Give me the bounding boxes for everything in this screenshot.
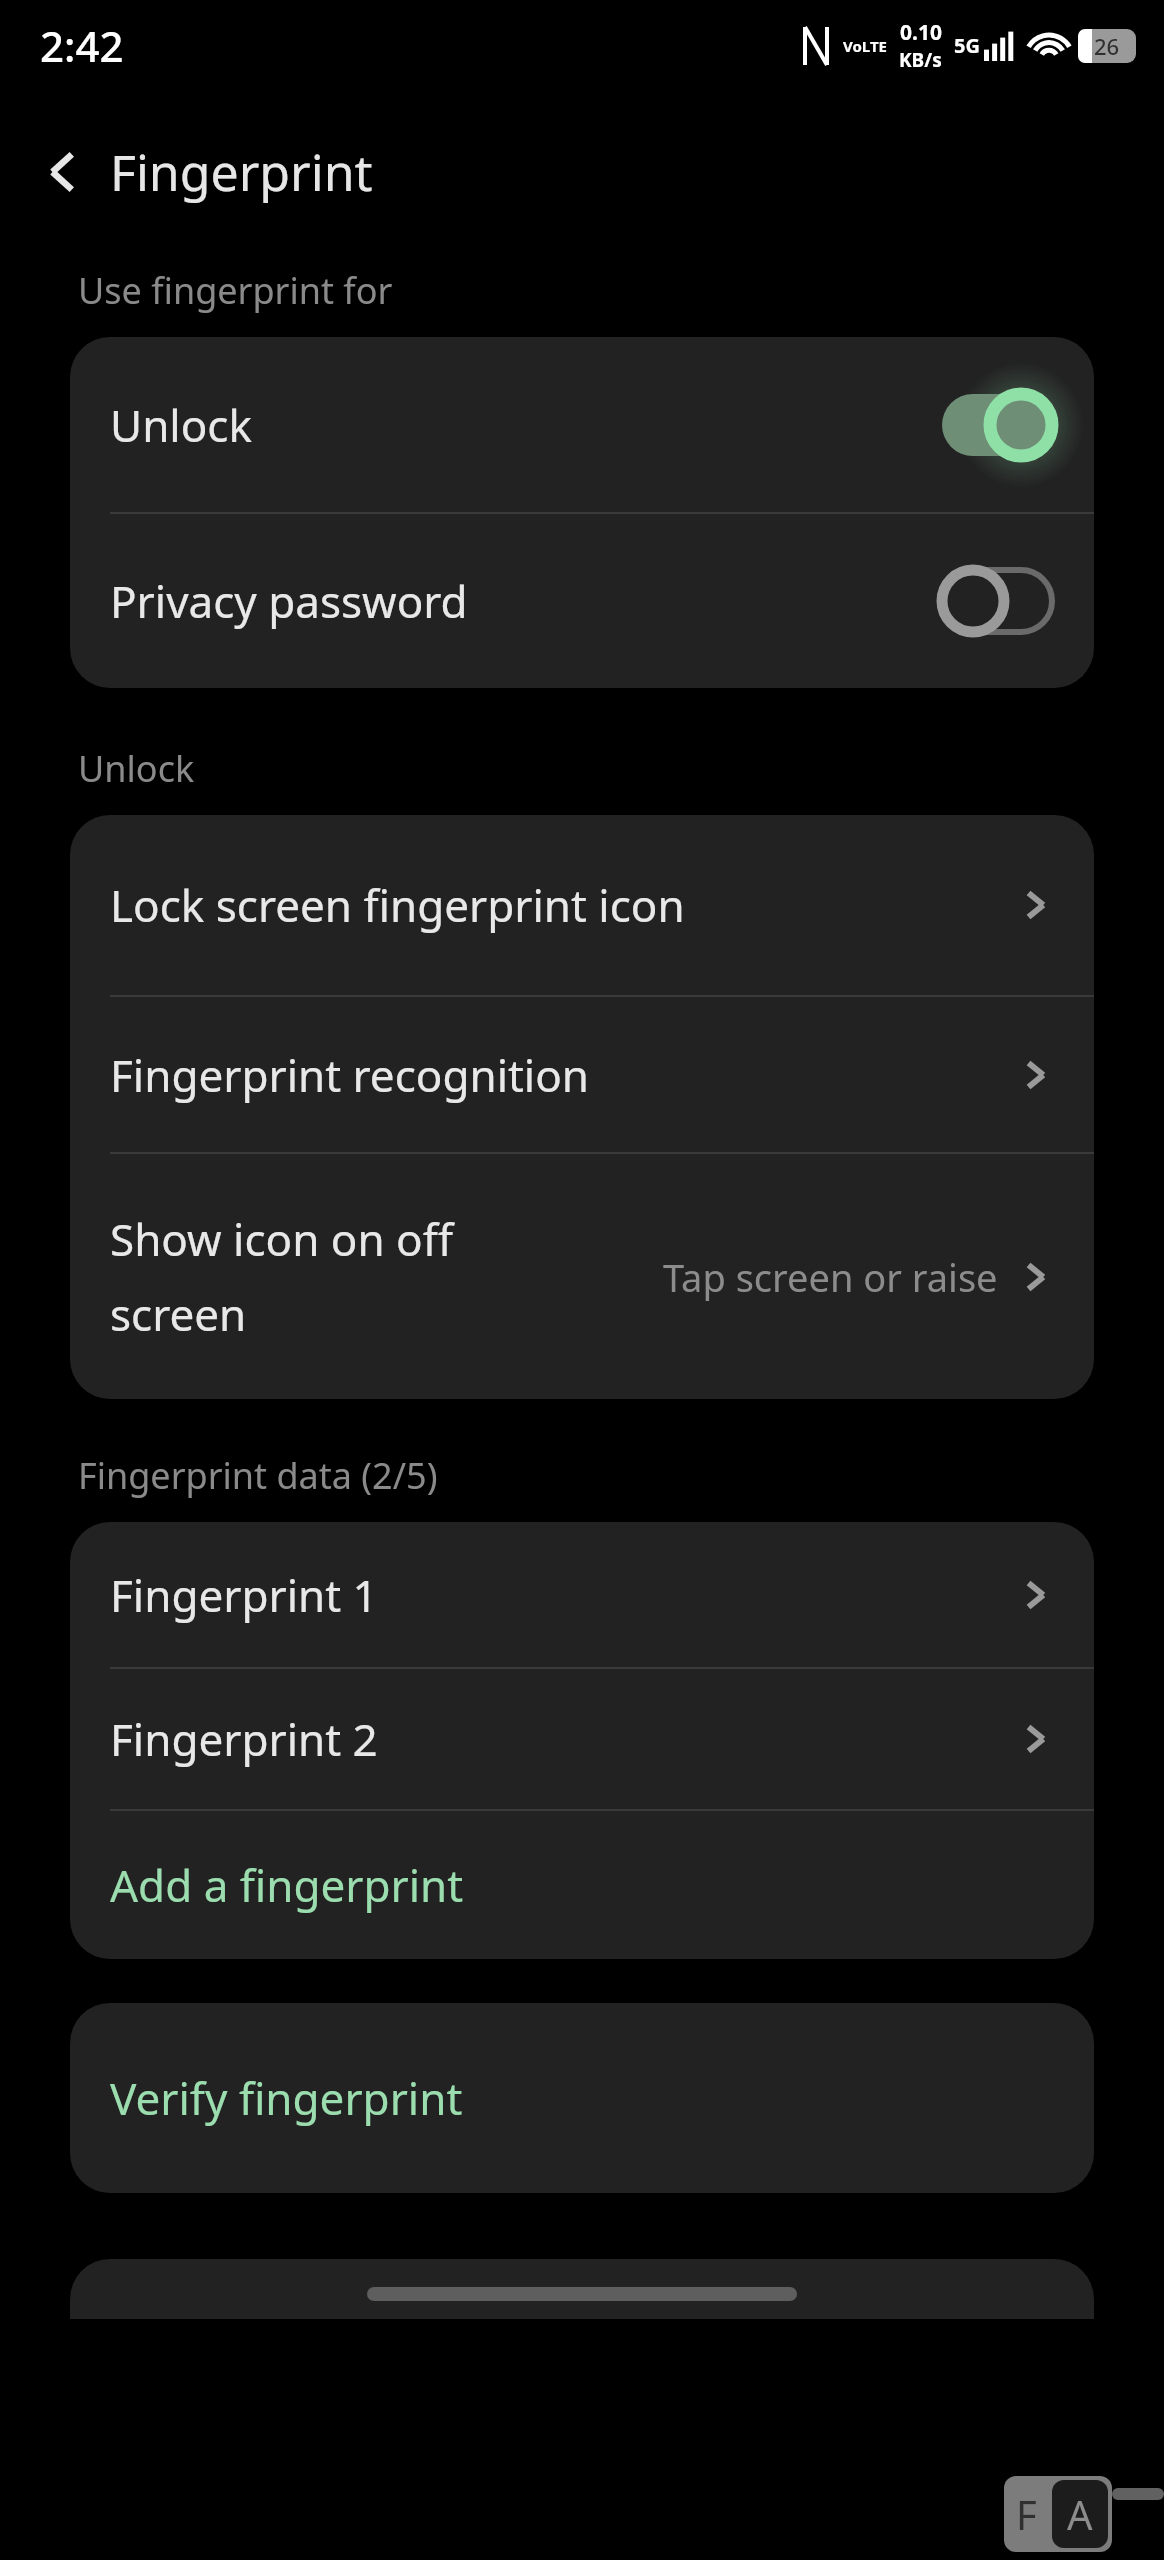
button[interactable]: Verify fingerprint <box>70 2003 1094 2193</box>
staticText: Verify fingerprint <box>110 2068 463 2128</box>
staticText: Unlock <box>78 744 195 793</box>
staticText: Add a fingerprint <box>110 1855 464 1915</box>
button[interactable]: Show icon on off screen <box>70 1154 1094 1399</box>
staticText: Fingerprint 2 <box>110 1709 1012 1769</box>
staticText: F <box>1016 2487 1037 2541</box>
staticText: A <box>1067 2487 1093 2541</box>
staticText: Show icon on off screen <box>110 1209 510 1344</box>
staticText: 0.10 <box>900 18 942 47</box>
staticText: Unlock <box>110 395 928 455</box>
button[interactable]: Privacy password <box>70 514 1094 688</box>
staticText: VoLTE <box>843 36 887 56</box>
button[interactable]: Lock screen fingerprint icon <box>70 815 1094 995</box>
staticText: Fingerprint data (2/5) <box>78 1451 438 1500</box>
button[interactable] <box>70 2259 1094 2319</box>
staticText: Privacy password <box>110 571 928 631</box>
staticText: Use fingerprint for <box>78 266 393 315</box>
button[interactable]: Accessibility floating shortcut <box>1004 2476 1164 2552</box>
button[interactable]: Fingerprint 2 <box>70 1669 1094 1809</box>
button[interactable]: Unlock <box>70 337 1094 512</box>
button[interactable]: Fingerprint 1 <box>70 1522 1094 1667</box>
staticText: 2:42 <box>40 17 124 74</box>
staticText: Tap screen or raise <box>663 1251 998 1303</box>
staticText: Fingerprint recognition <box>110 1045 1012 1105</box>
button[interactable]: Back <box>20 129 106 215</box>
staticText: Fingerprint 1 <box>110 1565 1012 1625</box>
staticText: 5G <box>954 32 980 59</box>
staticText: Lock screen fingerprint icon <box>110 875 1012 935</box>
staticText: KB/s <box>899 47 942 73</box>
button[interactable]: Fingerprint recognition <box>70 997 1094 1152</box>
staticText: 26 <box>1094 31 1120 61</box>
staticText: Fingerprint <box>110 138 373 206</box>
button[interactable]: Add a fingerprint <box>70 1811 1094 1959</box>
